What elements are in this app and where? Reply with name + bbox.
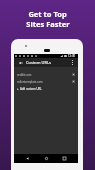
button[interactable]: More options	[69, 59, 76, 66]
button[interactable]: Home	[42, 154, 51, 163]
button[interactable]: Delete reddit.com	[72, 73, 75, 76]
button[interactable]: Recents	[60, 154, 69, 163]
staticText: 12:30	[68, 54, 76, 58]
staticText: Sites Faster	[26, 19, 70, 29]
button[interactable]: rollentemplate.com	[14, 78, 78, 85]
button[interactable]: + Add custom URL	[14, 85, 78, 92]
staticText: Get to Top	[28, 9, 67, 19]
button[interactable]: Back	[17, 59, 24, 66]
button[interactable]: Delete rollentemplate.com	[72, 80, 75, 83]
staticText: Custom URLs	[26, 60, 51, 65]
staticText: reddit.com	[17, 73, 32, 77]
button[interactable]: Back	[23, 154, 32, 163]
staticText: + Add custom URL	[17, 87, 42, 91]
staticText: rollentemplate.com	[17, 80, 43, 84]
button[interactable]: reddit.com	[14, 71, 78, 78]
